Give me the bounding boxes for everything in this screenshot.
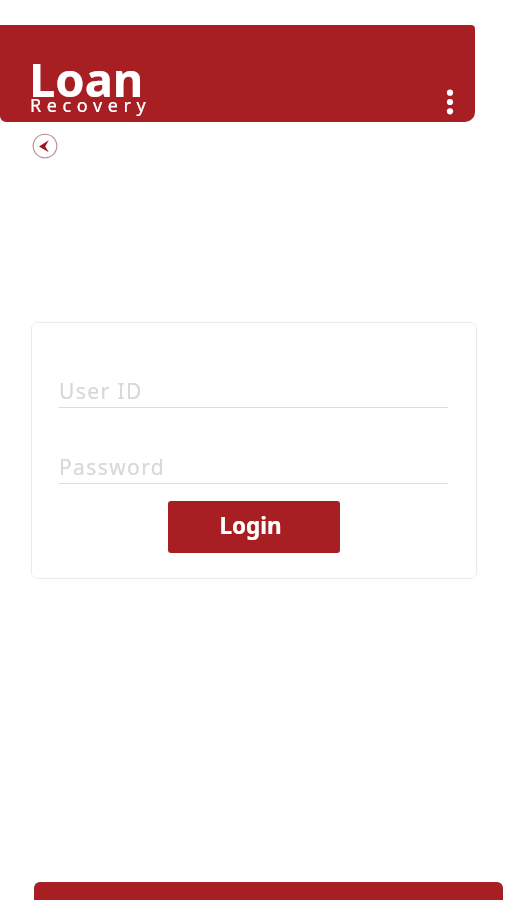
button[interactable]: More options bbox=[432, 84, 468, 120]
button[interactable]: Bottom bar bbox=[34, 882, 503, 900]
button[interactable]: Back bbox=[27, 128, 63, 164]
staticText: Recovery bbox=[30, 93, 152, 118]
staticText: Loan bbox=[29, 47, 144, 111]
button[interactable]: Login bbox=[168, 501, 340, 553]
button[interactable]: Password bbox=[59, 450, 448, 484]
staticText: Login bbox=[219, 510, 282, 541]
button[interactable]: User ID bbox=[59, 374, 448, 408]
staticText: Password bbox=[59, 453, 166, 482]
staticText: User ID bbox=[59, 377, 143, 406]
